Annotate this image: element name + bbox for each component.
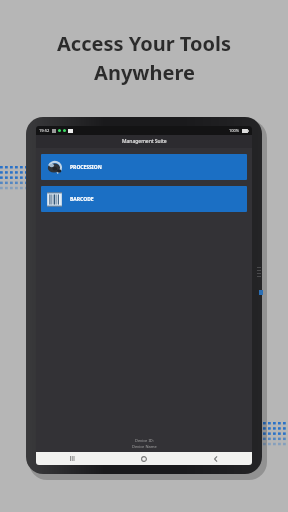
button[interactable]: Home [108, 452, 180, 465]
staticText: BARCODE [70, 196, 94, 203]
button[interactable]: BARCODE [41, 186, 247, 212]
staticText: Anywhere [94, 59, 195, 86]
staticText: 19:52 [39, 128, 50, 133]
button[interactable]: Back [180, 452, 252, 465]
button[interactable]: Recent apps [36, 452, 108, 465]
staticText: Device Name [132, 444, 157, 449]
staticText: 100% [229, 128, 240, 133]
staticText: Access Your Tools [57, 30, 231, 57]
staticText: Device ID: [135, 438, 154, 443]
staticText: PROCESSION [70, 164, 102, 171]
button[interactable]: PROCESSION [41, 154, 247, 180]
staticText: Management Suite [122, 138, 167, 145]
